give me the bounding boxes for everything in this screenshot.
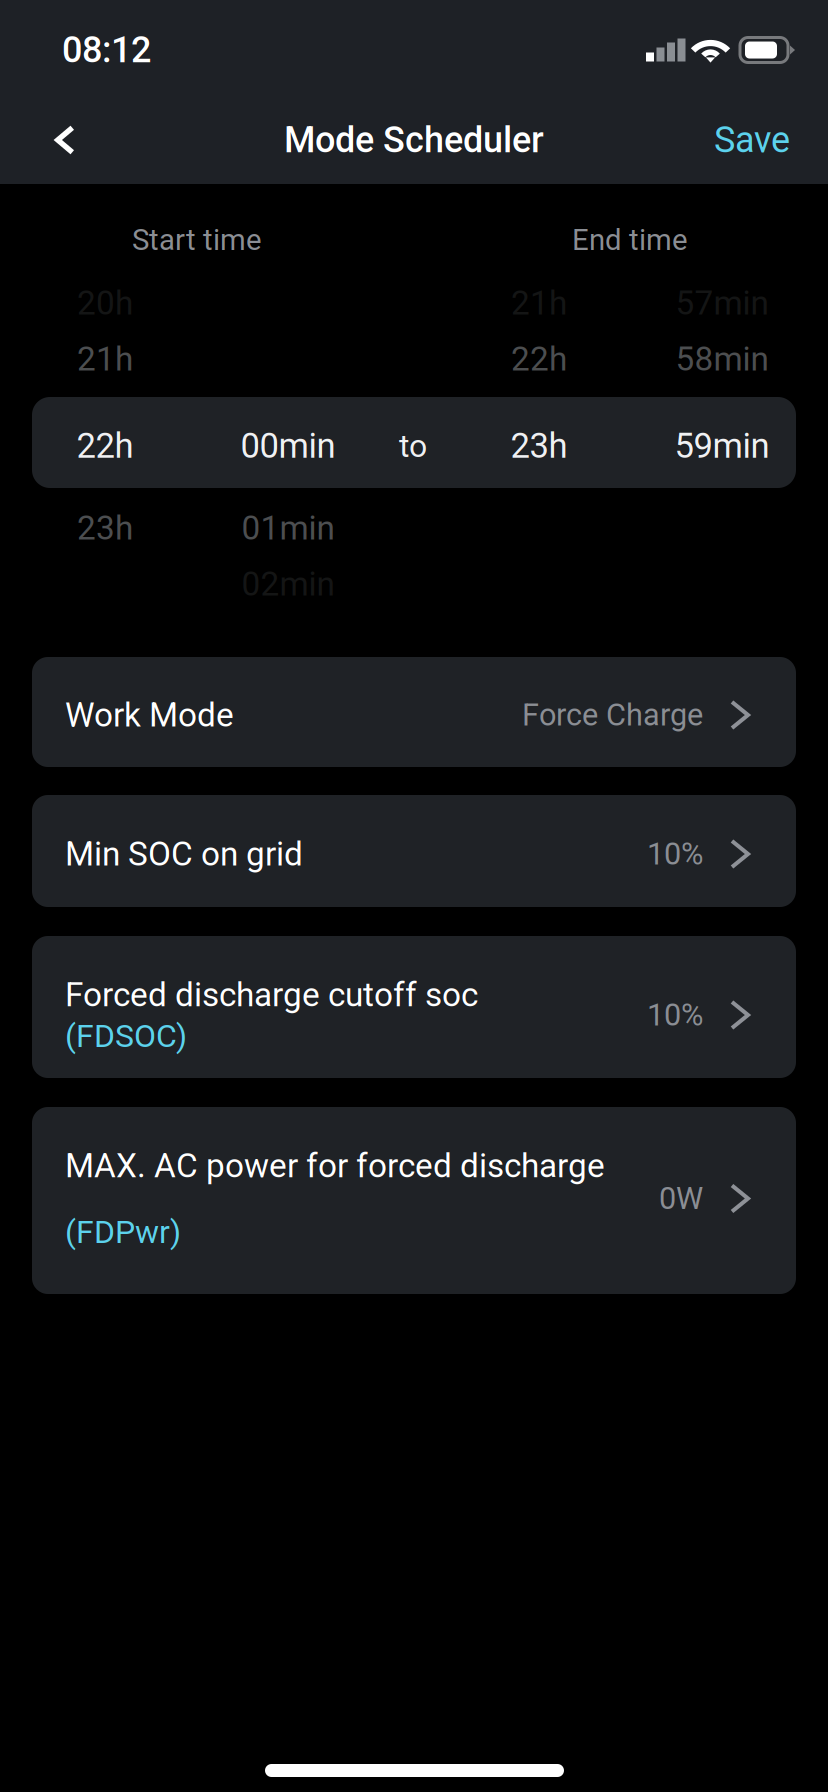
staticText: 21h	[77, 339, 133, 379]
staticText: 0W	[659, 1180, 703, 1216]
staticText: Work Mode	[65, 695, 234, 735]
staticText: to	[399, 427, 427, 465]
staticText: 20h	[77, 283, 133, 323]
staticText: MAX. AC power for forced discharge	[65, 1146, 605, 1185]
staticText: 10%	[647, 836, 703, 872]
staticText: 00min	[240, 426, 335, 466]
staticText: 23h	[77, 508, 133, 548]
button[interactable]: Work Mode	[32, 657, 796, 767]
button[interactable]: Save	[660, 98, 790, 182]
staticText: Min SOC on grid	[65, 834, 303, 874]
staticText: End time	[572, 223, 688, 257]
staticText: 10%	[647, 997, 703, 1033]
staticText: Force Charge	[522, 697, 703, 733]
staticText: (FDSOC)	[65, 1017, 187, 1055]
staticText: 58min	[675, 339, 768, 379]
staticText: Start time	[132, 223, 262, 257]
staticText: 22h	[511, 339, 567, 379]
staticText: 22h	[76, 426, 133, 466]
staticText: (FDPwr)	[65, 1213, 181, 1251]
button[interactable]: Back	[23, 98, 107, 182]
staticText: 23h	[510, 426, 567, 466]
staticText: 01min	[241, 508, 334, 548]
staticText: 59min	[674, 426, 769, 466]
button[interactable]: MAX. AC power for forced discharge	[32, 1107, 796, 1294]
button[interactable]: Forced discharge cutoff soc	[32, 936, 796, 1078]
staticText: Save	[714, 119, 790, 161]
button[interactable]: Min SOC on grid	[32, 795, 796, 907]
staticText: 21h	[511, 283, 567, 323]
staticText: 57min	[675, 283, 768, 323]
staticText: 02min	[241, 564, 334, 604]
staticText: Mode Scheduler	[284, 119, 544, 161]
staticText: Forced discharge cutoff soc	[65, 975, 478, 1014]
staticText: 08:12	[62, 29, 151, 71]
